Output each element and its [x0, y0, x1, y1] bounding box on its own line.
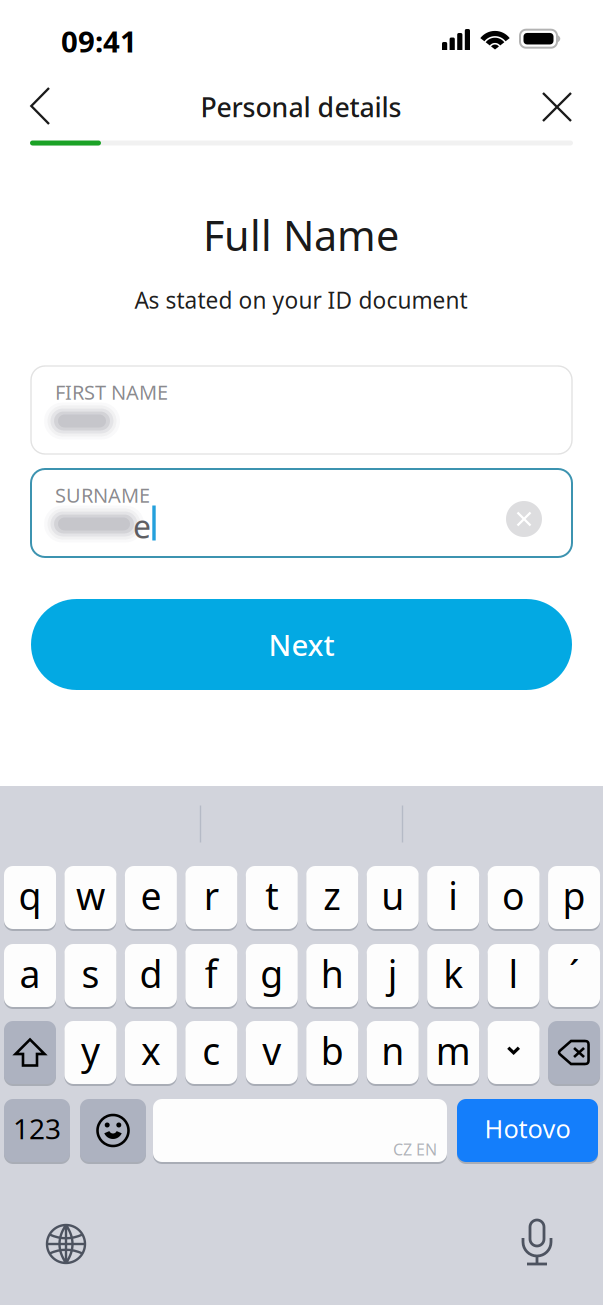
button[interactable]: Close [529, 79, 585, 135]
button[interactable]: o [488, 866, 540, 929]
button[interactable]: l [488, 944, 540, 1007]
button[interactable]: h [306, 944, 358, 1007]
button[interactable]: Next [31, 599, 572, 690]
button[interactable]: Back [12, 78, 68, 134]
button[interactable]: Emoji [80, 1099, 146, 1162]
staticText: c [202, 1026, 220, 1075]
button[interactable]: y [64, 1021, 116, 1084]
button[interactable]: Delete [548, 1021, 600, 1084]
staticText: t [265, 871, 278, 920]
staticText: o [502, 871, 525, 920]
button[interactable]: a [4, 944, 56, 1007]
button[interactable]: Space [153, 1099, 447, 1162]
button[interactable]: Dictate [509, 1214, 565, 1270]
staticText: CZ EN [393, 1139, 437, 1160]
button[interactable]: n [367, 1021, 419, 1084]
button[interactable]: Caron [488, 1021, 540, 1084]
button[interactable]: q [4, 866, 56, 929]
staticText: k [443, 949, 463, 998]
staticText: e [133, 505, 151, 547]
staticText: x [141, 1026, 161, 1075]
staticText: SURNAME [55, 482, 150, 508]
staticText: s [81, 949, 99, 998]
button[interactable]: i [427, 866, 479, 929]
button[interactable]: d [125, 944, 177, 1007]
button[interactable]: s [64, 944, 116, 1007]
staticText: m [436, 1026, 471, 1075]
staticText: j [388, 949, 398, 998]
staticText: g [260, 949, 283, 998]
staticText: b [321, 1026, 344, 1075]
button[interactable]: m [427, 1021, 479, 1084]
button[interactable]: u [367, 866, 419, 929]
staticText: n [381, 1026, 404, 1075]
staticText: e [140, 871, 161, 920]
staticText: r [204, 871, 219, 920]
button[interactable]: Shift [4, 1021, 56, 1084]
button[interactable]: g [246, 944, 298, 1007]
staticText: FIRST NAME [55, 379, 168, 405]
staticText: z [323, 871, 341, 920]
staticText: 123 [13, 1110, 61, 1147]
staticText: Hotovo [484, 1112, 570, 1145]
staticText: ´ [569, 949, 579, 998]
button[interactable]: 123 [4, 1099, 70, 1162]
staticText: Personal details [200, 89, 401, 125]
staticText: p [563, 871, 586, 920]
button[interactable]: z [306, 866, 358, 929]
staticText: i [448, 871, 458, 920]
button[interactable]: e [125, 866, 177, 929]
staticText: h [321, 949, 344, 998]
button[interactable]: v [246, 1021, 298, 1084]
button[interactable]: b [306, 1021, 358, 1084]
button[interactable]: ´ [548, 944, 600, 1007]
button[interactable]: Next keyboard [38, 1216, 94, 1272]
button[interactable]: f [185, 944, 237, 1007]
staticText: Next [268, 625, 334, 664]
button[interactable]: j [367, 944, 419, 1007]
staticText: d [139, 949, 162, 998]
button[interactable]: Clear text [498, 493, 550, 545]
staticText: y [81, 1026, 100, 1075]
button[interactable]: x [125, 1021, 177, 1084]
staticText: l [509, 949, 519, 998]
staticText: Full Name [203, 208, 399, 262]
staticText: w [76, 871, 105, 920]
button[interactable]: w [64, 866, 116, 929]
staticText: a [19, 949, 40, 998]
staticText: q [18, 871, 41, 920]
button[interactable]: p [548, 866, 600, 929]
staticText: 09:41 [61, 21, 137, 60]
button[interactable]: k [427, 944, 479, 1007]
staticText: u [381, 871, 404, 920]
button[interactable]: t [246, 866, 298, 929]
button[interactable]: c [185, 1021, 237, 1084]
staticText: v [262, 1026, 281, 1075]
staticText: As stated on your ID document [134, 285, 467, 315]
staticText: f [205, 949, 218, 998]
button[interactable]: Hotovo [457, 1099, 598, 1162]
button[interactable]: r [185, 866, 237, 929]
